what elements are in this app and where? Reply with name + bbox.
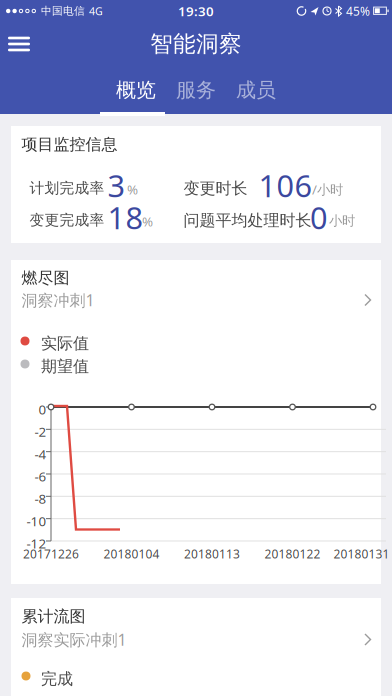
staticText: -2 <box>34 423 46 440</box>
button[interactable]: 服务 <box>166 68 226 112</box>
staticText: 洞察实际冲刺1 <box>21 629 126 650</box>
button[interactable]: 概览 <box>106 68 166 112</box>
staticText: 45% <box>346 3 370 19</box>
button[interactable]: 菜单 <box>0 24 30 64</box>
staticText: 18 <box>107 197 143 238</box>
staticText: 20180122 <box>264 546 320 562</box>
staticText: 变更时长 <box>183 178 247 198</box>
staticText: 期望值 <box>41 356 89 376</box>
staticText: 问题平均处理时长 <box>183 210 311 230</box>
staticText: -4 <box>34 445 46 463</box>
staticText: 20180104 <box>103 546 159 562</box>
staticText: % <box>127 180 138 198</box>
staticText: 智能洞察 <box>150 30 242 58</box>
button[interactable]: 洞察冲刺1 <box>11 289 381 311</box>
staticText: 20171226 <box>23 546 79 562</box>
staticText: 19:30 <box>178 2 214 20</box>
staticText: 概览 <box>116 78 156 102</box>
staticText: 中国电信 <box>41 4 85 17</box>
staticText: 洞察冲刺1 <box>21 289 94 311</box>
staticText: 项目监控信息 <box>21 134 117 154</box>
staticText: 完成 <box>41 669 73 689</box>
staticText: 变更完成率 <box>29 211 104 229</box>
staticText: -12 <box>26 534 46 552</box>
staticText: 20180131 <box>333 546 389 562</box>
staticText: 106 <box>258 165 312 206</box>
staticText: -8 <box>34 490 46 507</box>
staticText: 计划完成率 <box>29 179 104 197</box>
staticText: 小时 <box>329 212 355 229</box>
staticText: -6 <box>34 467 46 485</box>
staticText: 服务 <box>176 78 216 102</box>
button[interactable]: 洞察实际冲刺1 <box>11 628 381 650</box>
button[interactable]: 成员 <box>226 68 286 112</box>
staticText: 0 <box>310 197 328 238</box>
staticText: 燃尽图 <box>21 268 69 288</box>
staticText: -10 <box>26 512 46 530</box>
staticText: 累计流图 <box>21 606 85 626</box>
staticText: 3 <box>107 165 125 206</box>
staticText: 0 <box>38 400 46 418</box>
staticText: 20180113 <box>184 546 240 562</box>
staticText: 4G <box>89 4 103 18</box>
staticText: 成员 <box>236 78 276 102</box>
staticText: /小时 <box>312 180 343 198</box>
staticText: % <box>142 212 153 230</box>
staticText: 实际值 <box>41 333 89 353</box>
